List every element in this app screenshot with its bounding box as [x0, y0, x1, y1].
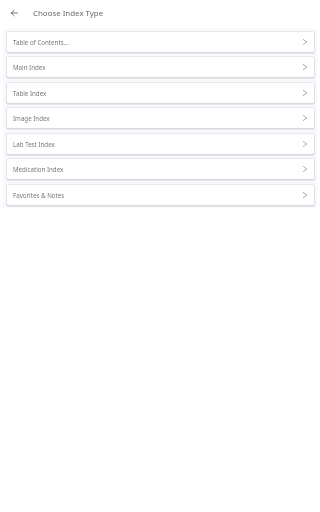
button[interactable]: Lab Test Index	[7, 134, 314, 154]
staticText: Table of Contents...	[13, 38, 303, 46]
staticText: Favorites & Notes	[13, 191, 303, 199]
button[interactable]: Table Index	[7, 83, 314, 103]
staticText: Main Index	[13, 63, 303, 71]
button[interactable]: Favorites & Notes	[7, 185, 314, 205]
button[interactable]: Medication Index	[7, 159, 314, 179]
staticText: Table Index	[13, 89, 303, 97]
button[interactable]: Table of Contents...	[7, 32, 314, 52]
staticText: Medication Index	[13, 165, 303, 173]
button[interactable]: Image Index	[7, 108, 314, 128]
button[interactable]: Main Index	[7, 57, 314, 77]
button[interactable]: Navigate back	[0, 0, 29, 29]
staticText: Image Index	[13, 114, 303, 122]
staticText: Choose Index Type	[33, 8, 104, 19]
staticText: Lab Test Index	[13, 140, 303, 148]
